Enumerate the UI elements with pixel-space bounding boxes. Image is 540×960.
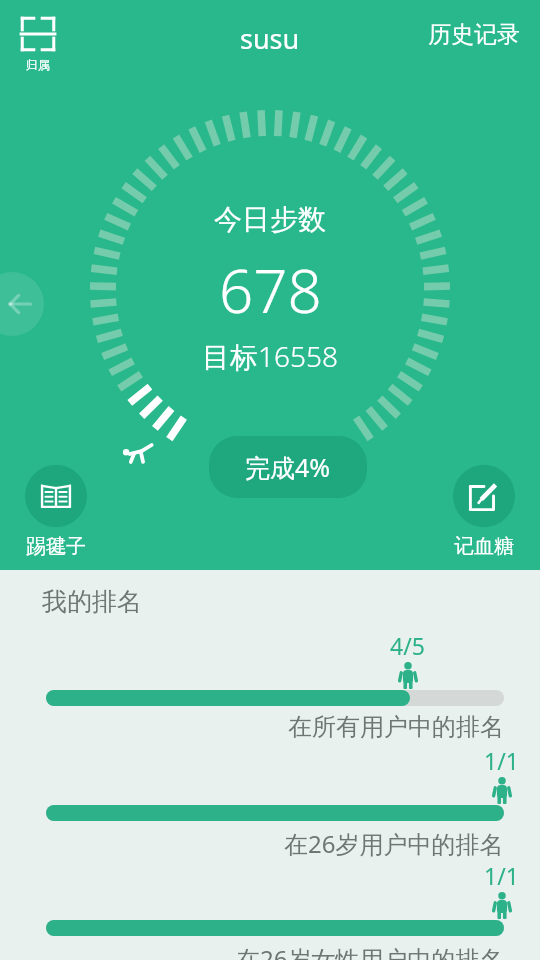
staticText: 1/1 (484, 745, 519, 776)
staticText: 在26岁用户中的排名 (284, 827, 504, 857)
staticText: 踢毽子 (26, 534, 86, 559)
staticText: susu (240, 20, 300, 57)
staticText: 今日步数 (214, 202, 326, 237)
button[interactable]: 归属 (14, 12, 62, 76)
staticText: 记血糖 (454, 534, 514, 559)
staticText: 4/5 (390, 630, 425, 661)
button[interactable]: 4/5 (0, 630, 540, 742)
button[interactable]: 记血糖 (450, 462, 518, 562)
button[interactable]: 返回 (0, 272, 44, 336)
staticText: 目标16558 (202, 337, 338, 375)
staticText: 1/1 (484, 860, 519, 891)
button[interactable]: 历史记录 (414, 8, 534, 61)
staticText: 678 (219, 249, 322, 331)
staticText: 在26岁女性用户中的排名 (236, 942, 504, 960)
staticText: 归属 (26, 57, 50, 72)
button[interactable]: 1/1 (0, 745, 540, 857)
button[interactable]: 1/1 (0, 860, 540, 960)
staticText: 完成4% (245, 450, 331, 484)
button[interactable]: 完成4% (209, 436, 367, 498)
staticText: 在所有用户中的排名 (288, 712, 504, 742)
staticText: 我的排名 (42, 586, 142, 617)
button[interactable]: 踢毽子 (22, 462, 90, 562)
staticText: 历史记录 (428, 20, 520, 49)
